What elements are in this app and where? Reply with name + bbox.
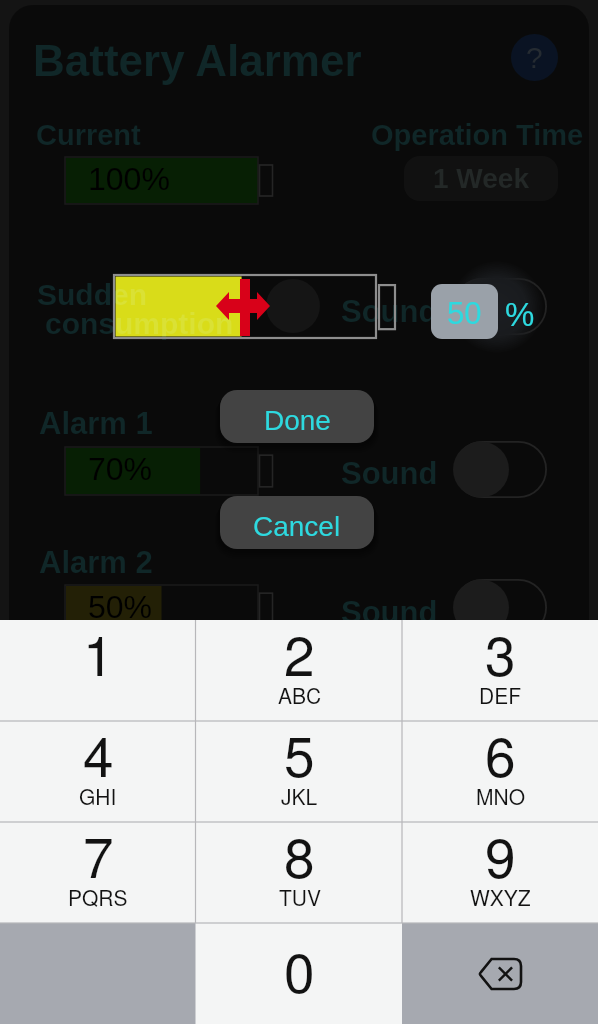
staticText: Operation Time: [371, 119, 584, 151]
staticText: 0: [284, 930, 315, 1009]
button[interactable]: 1 Week: [404, 156, 558, 201]
staticText: Sudden: [37, 278, 147, 312]
staticText: 3: [485, 613, 516, 692]
staticText: 5: [284, 714, 315, 793]
staticText: Done: [264, 405, 331, 436]
button[interactable]: 50: [431, 284, 498, 339]
staticText: 100%: [88, 161, 170, 197]
button[interactable]: 3: [402, 620, 598, 721]
staticText: 4: [83, 714, 114, 793]
staticText: Sound: [341, 595, 438, 630]
staticText: 2: [284, 613, 315, 692]
button[interactable]: Done: [220, 390, 374, 443]
button[interactable]: 9: [402, 822, 598, 923]
staticText: ABC: [278, 680, 322, 710]
staticText: Sound: [341, 294, 438, 329]
button[interactable]: 4: [0, 721, 196, 822]
staticText: consumption: [45, 307, 234, 341]
staticText: TUV: [279, 882, 321, 912]
button[interactable]: Cancel: [220, 496, 374, 549]
staticText: 70%: [88, 451, 153, 487]
staticText: JKL: [281, 781, 318, 811]
button[interactable]: 6: [402, 721, 598, 822]
button[interactable]: Sound toggle: [454, 579, 547, 636]
staticText: Current: [36, 119, 141, 151]
staticText: DEF: [479, 680, 521, 710]
button[interactable]: Sound toggle: [454, 278, 547, 335]
button[interactable]: 2: [196, 620, 403, 721]
button[interactable]: Delete: [402, 923, 598, 1024]
button[interactable]: 8: [196, 822, 403, 923]
staticText: 50%: [88, 589, 153, 625]
staticText: MNO: [476, 781, 525, 811]
staticText: 6: [485, 714, 516, 793]
staticText: Alarm 2: [39, 545, 153, 580]
staticText: 7: [83, 815, 114, 894]
staticText: Alarm 1: [39, 406, 153, 441]
staticText: 8: [284, 815, 315, 894]
staticText: 1: [83, 613, 114, 692]
staticText: 9: [485, 815, 516, 894]
staticText: 50: [447, 296, 482, 331]
button[interactable]: Sound toggle: [454, 441, 547, 498]
button[interactable]: 0: [196, 923, 403, 1024]
button[interactable]: Help: [511, 34, 558, 81]
button[interactable]: 7: [0, 822, 196, 923]
staticText: Cancel: [253, 511, 341, 542]
staticText: ?: [526, 41, 543, 75]
staticText: %: [505, 296, 535, 333]
staticText: GHI: [79, 781, 117, 811]
button[interactable]: 5: [196, 721, 403, 822]
staticText: Sound: [341, 456, 438, 491]
staticText: 1 Week: [433, 163, 529, 194]
staticText: WXYZ: [470, 882, 531, 912]
button[interactable]: 1: [0, 620, 196, 721]
staticText: Battery Alarmer: [33, 36, 362, 85]
staticText: PQRS: [68, 882, 128, 912]
